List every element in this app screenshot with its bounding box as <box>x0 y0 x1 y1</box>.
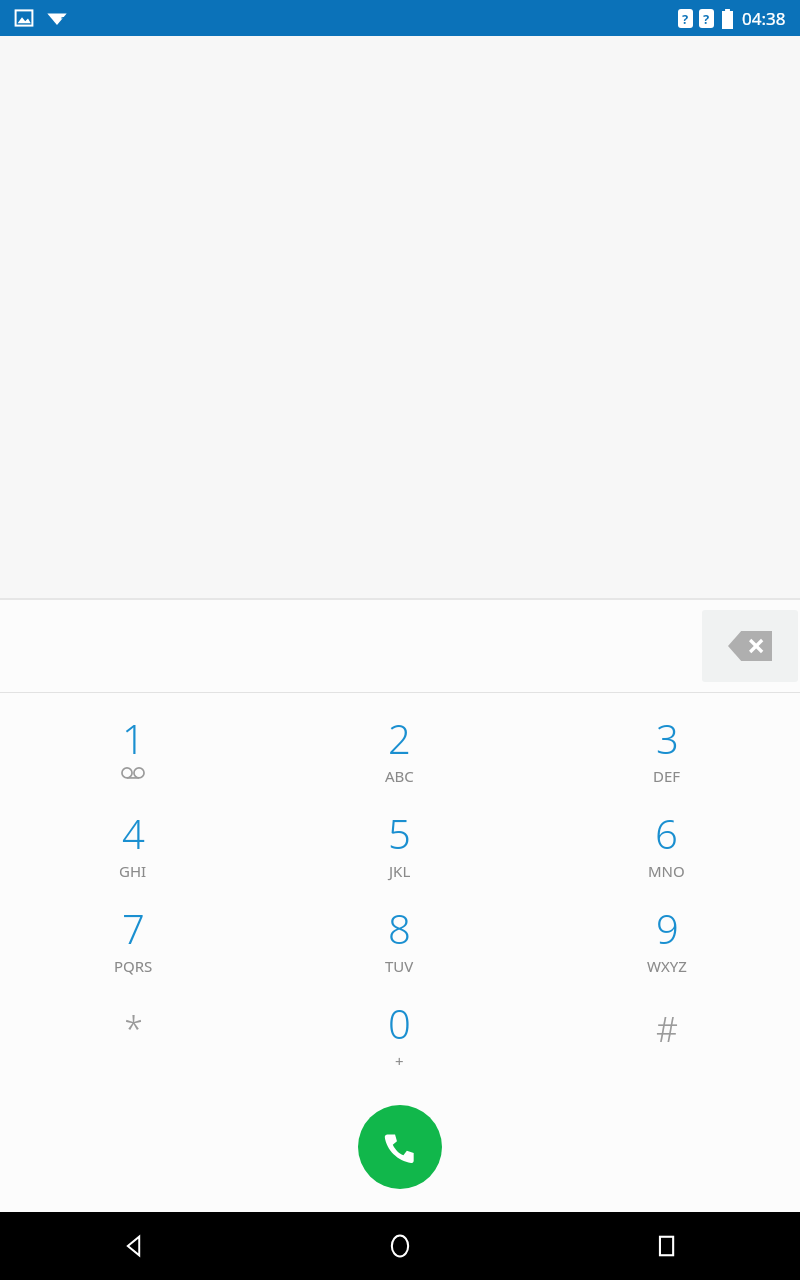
button[interactable]: 2 <box>266 711 533 806</box>
button[interactable]: * <box>0 996 266 1091</box>
staticText: 1 <box>122 711 145 765</box>
staticText: 7 <box>122 901 145 955</box>
button[interactable]: # <box>533 996 800 1091</box>
button[interactable]: Recent apps <box>533 1212 800 1280</box>
staticText: ? <box>703 10 710 28</box>
button[interactable]: 5 <box>266 806 533 901</box>
staticText: + <box>395 1051 404 1071</box>
staticText: 8 <box>388 901 411 955</box>
button[interactable]: 7 <box>0 901 266 996</box>
staticText: ? <box>61 13 67 28</box>
staticText: 04:38 <box>742 7 786 30</box>
staticText: 9 <box>656 901 679 955</box>
staticText: 6 <box>655 806 678 860</box>
button[interactable]: 0 <box>266 996 533 1091</box>
staticText: DEF <box>653 766 681 786</box>
button[interactable]: 4 <box>0 806 266 901</box>
staticText: 5 <box>388 806 411 860</box>
button[interactable]: 9 <box>533 901 800 996</box>
button[interactable]: 6 <box>533 806 800 901</box>
staticText: ? <box>682 10 689 28</box>
button[interactable]: Home <box>266 1212 533 1280</box>
staticText: 2 <box>388 711 411 765</box>
staticText: TUV <box>385 956 414 976</box>
button[interactable]: 3 <box>533 711 800 806</box>
button[interactable]: Call <box>358 1105 442 1189</box>
staticText: JKL <box>389 861 411 881</box>
staticText: 4 <box>122 806 145 860</box>
staticText: MNO <box>648 861 685 881</box>
staticText: GHI <box>119 861 147 881</box>
staticText: # <box>656 1006 678 1052</box>
staticText: * <box>124 1006 143 1052</box>
staticText: 0 <box>388 996 411 1050</box>
button[interactable]: 8 <box>266 901 533 996</box>
staticText: PQRS <box>114 956 153 976</box>
button[interactable]: Backspace <box>702 610 798 682</box>
staticText: WXYZ <box>647 956 687 976</box>
button[interactable]: 1 <box>0 711 266 806</box>
staticText: 3 <box>656 711 679 765</box>
button[interactable]: Back <box>0 1212 266 1280</box>
staticText: ABC <box>385 766 414 786</box>
